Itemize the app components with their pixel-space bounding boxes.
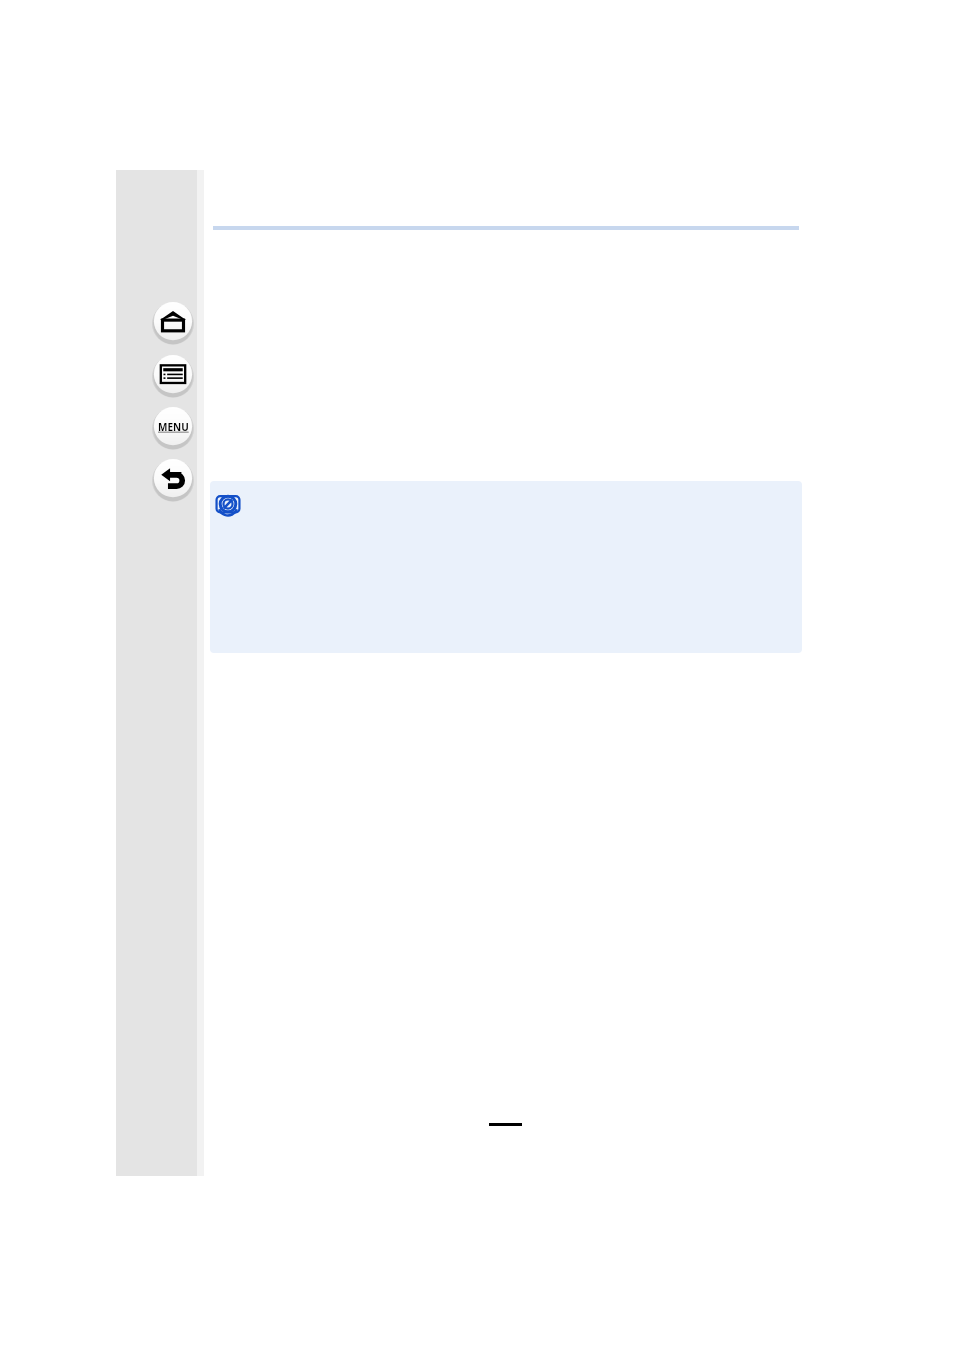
button[interactable]: Back: [152, 458, 194, 500]
staticText: MENU: [158, 420, 189, 434]
other: Not available: [215, 491, 241, 517]
button[interactable]: Contents: [152, 354, 194, 396]
button[interactable]: Home: [152, 301, 194, 343]
button[interactable]: Not available: [210, 481, 802, 653]
button[interactable]: Menu: [152, 406, 194, 448]
